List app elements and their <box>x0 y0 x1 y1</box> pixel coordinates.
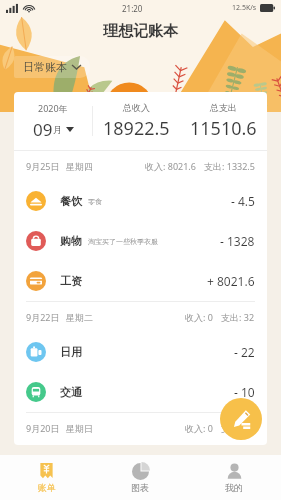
staticText: 日常账本 <box>23 60 67 74</box>
staticText: 总支出 <box>210 102 237 113</box>
staticText: 支出: 1332.5 <box>204 160 255 172</box>
staticText: 工资 <box>60 274 82 288</box>
staticText: 9月20日 <box>26 422 60 434</box>
staticText: 总收入 <box>123 102 150 113</box>
button[interactable]: 交通 <box>14 372 267 412</box>
staticText: 12.5K/s <box>232 3 257 13</box>
staticText: 收入: 0 <box>185 422 213 434</box>
staticText: 支出: 32 <box>221 311 255 323</box>
staticText: 星期二 <box>66 312 93 323</box>
staticText: - 1328 <box>220 233 255 249</box>
staticText: 09 <box>33 118 53 141</box>
staticText: 淘宝买了一些秋季衣服 <box>88 237 158 246</box>
button[interactable]: 我的 <box>187 455 281 500</box>
staticText: 9月25日 <box>26 160 60 172</box>
button[interactable]: 餐饮 <box>14 181 267 221</box>
button[interactable]: 图表 <box>93 455 187 500</box>
staticText: 18922.5 <box>103 116 170 141</box>
staticText: - 22 <box>234 344 255 360</box>
button[interactable]: 日常账本 <box>14 56 90 78</box>
staticText: 星期日 <box>66 423 93 434</box>
staticText: 购物 <box>60 234 82 248</box>
button[interactable]: 2020年 <box>14 92 92 150</box>
staticText: 2020年 <box>38 102 68 114</box>
staticText: 交通 <box>60 385 82 399</box>
staticText: 星期四 <box>66 161 93 172</box>
staticText: 支出: 30 <box>221 422 255 434</box>
staticText: 9月22日 <box>26 311 60 323</box>
staticText: - 10 <box>234 384 255 400</box>
staticText: 图表 <box>131 482 149 493</box>
button[interactable]: 工资 <box>14 261 267 301</box>
staticText: 日用 <box>60 345 82 359</box>
button[interactable]: Add record <box>220 398 262 440</box>
staticText: 餐饮 <box>60 194 82 208</box>
staticText: 零食 <box>88 197 102 206</box>
staticText: 收入: 0 <box>185 311 213 323</box>
staticText: 我的 <box>225 482 243 493</box>
staticText: 理想记账本 <box>103 22 178 41</box>
staticText: 收入: 8021.6 <box>145 160 196 172</box>
button[interactable]: 购物 <box>14 221 267 261</box>
staticText: + 8021.6 <box>207 273 255 289</box>
staticText: 11510.6 <box>190 116 257 141</box>
button[interactable]: 账单 <box>0 455 93 500</box>
staticText: 月 <box>53 124 62 135</box>
button[interactable]: 日用 <box>14 332 267 372</box>
staticText: - 4.5 <box>231 193 255 209</box>
staticText: 21:20 <box>122 3 143 14</box>
staticText: 账单 <box>38 482 56 493</box>
